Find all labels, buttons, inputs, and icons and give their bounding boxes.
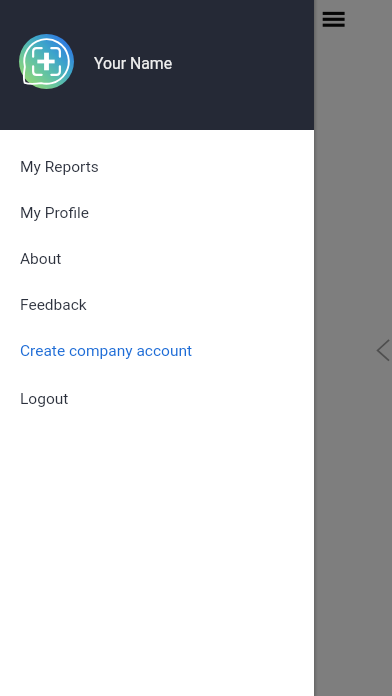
staticText: About (20, 250, 62, 268)
button[interactable]: My Profile (0, 190, 314, 236)
staticText: My Reports (20, 158, 99, 176)
button[interactable]: Feedback (0, 282, 314, 328)
button[interactable]: Open navigation menu (318, 5, 350, 37)
button[interactable]: About (0, 236, 314, 282)
staticText: Logout (20, 390, 69, 408)
staticText: Your Name (94, 54, 173, 73)
button[interactable]: My Reports (0, 144, 314, 190)
staticText: Create company account (20, 342, 193, 360)
staticText: Feedback (20, 296, 87, 314)
button[interactable]: Create company account (0, 328, 314, 374)
button[interactable]: Back (374, 334, 392, 368)
staticText: My Profile (20, 204, 90, 222)
button[interactable]: Logout (0, 376, 314, 422)
